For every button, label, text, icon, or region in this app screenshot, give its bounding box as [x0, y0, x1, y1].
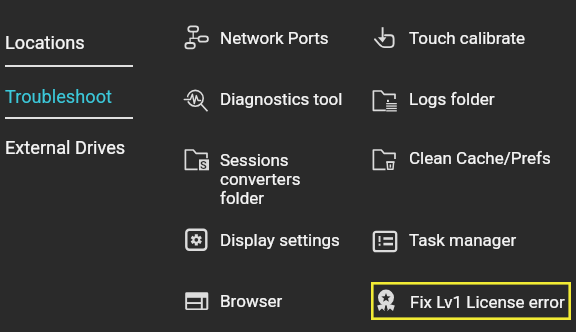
other: Display settings	[184, 228, 208, 252]
other: Logs folder	[372, 88, 396, 112]
button[interactable]: Troubleshoot	[0, 86, 150, 110]
staticText: Network Ports	[220, 28, 329, 48]
button[interactable]	[366, 83, 556, 117]
button[interactable]	[366, 142, 556, 176]
other: Touch calibrate	[372, 26, 396, 50]
staticText: S	[200, 159, 207, 172]
other: Clean Cache/Prefs	[372, 147, 396, 171]
button[interactable]	[178, 21, 368, 55]
button[interactable]	[178, 142, 368, 176]
other: Task manager	[373, 228, 397, 252]
staticText: External Drives	[5, 137, 126, 158]
button[interactable]	[178, 223, 368, 257]
staticText: Logs folder	[409, 89, 495, 109]
staticText: Fix Lv1 License error	[410, 292, 565, 312]
other: Sessions converters folder	[184, 147, 208, 171]
staticText: Clean Cache/Prefs	[409, 148, 551, 168]
staticText: Diagnostics tool	[220, 89, 343, 109]
button[interactable]: External Drives	[0, 137, 150, 161]
button[interactable]: Fix Lv1 License error	[371, 282, 571, 320]
other: Network Ports	[184, 26, 208, 50]
staticText: Touch calibrate	[409, 28, 526, 48]
button[interactable]: Locations	[0, 32, 150, 56]
other: Browser	[184, 288, 208, 312]
staticText: Task manager	[409, 230, 517, 250]
staticText: Browser	[220, 291, 283, 311]
button[interactable]	[367, 223, 557, 257]
staticText: Locations	[5, 32, 85, 53]
staticText: Troubleshoot	[5, 86, 112, 107]
button[interactable]	[366, 21, 556, 55]
button[interactable]	[178, 83, 368, 117]
button[interactable]	[178, 283, 368, 317]
other: Diagnostics tool	[184, 88, 208, 112]
staticText: Display settings	[220, 230, 340, 250]
other: Fix Lv1 License error	[374, 288, 398, 312]
staticText: Sessions converters folder	[220, 150, 301, 208]
